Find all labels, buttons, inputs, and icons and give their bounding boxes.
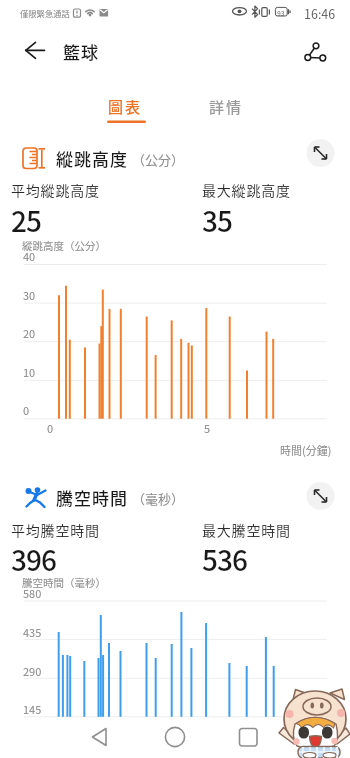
- staticText: 籃球: [63, 39, 99, 64]
- staticText: 圖表: [108, 96, 143, 118]
- staticText: 10: [23, 364, 36, 380]
- staticText: 20: [23, 325, 36, 341]
- staticText: 580: [23, 585, 42, 601]
- button[interactable]: [306, 139, 335, 168]
- staticText: 縱跳高度: [56, 146, 128, 171]
- button[interactable]: [14, 35, 56, 65]
- staticText: 35: [202, 200, 232, 241]
- staticText: 最大騰空時間: [202, 520, 291, 540]
- staticText: 536: [202, 539, 247, 580]
- staticText: 0: [47, 420, 54, 436]
- button[interactable]: [223, 719, 273, 758]
- staticText: 5: [204, 420, 211, 436]
- staticText: 40: [23, 248, 36, 264]
- staticText: （毫秒）: [132, 489, 185, 508]
- staticText: 396: [11, 539, 56, 580]
- staticText: （公分）: [132, 150, 185, 169]
- staticText: 145: [23, 701, 42, 717]
- staticText: 最大縱跳高度: [202, 180, 291, 200]
- staticText: 93: [277, 8, 285, 18]
- staticText: 縱跳高度（公分）: [22, 238, 106, 253]
- button[interactable]: [75, 719, 125, 758]
- staticText: 僅限緊急通話: [20, 7, 70, 19]
- staticText: 0: [23, 402, 30, 418]
- staticText: 25: [11, 200, 41, 241]
- staticText: 平均騰空時間: [11, 520, 100, 540]
- staticText: 290: [23, 663, 42, 679]
- button[interactable]: [96, 88, 156, 124]
- staticText: 詳情: [209, 96, 244, 118]
- staticText: 平均縱跳高度: [11, 180, 100, 200]
- staticText: 時間(分鐘): [280, 442, 332, 458]
- button[interactable]: [197, 88, 257, 124]
- button[interactable]: [150, 719, 200, 758]
- staticText: 騰空時間: [56, 485, 128, 510]
- staticText: 30: [23, 287, 36, 303]
- button[interactable]: [306, 482, 335, 511]
- staticText: 16:46: [304, 4, 336, 22]
- button[interactable]: [298, 35, 338, 67]
- staticText: 騰空時間（毫秒）: [22, 575, 106, 590]
- staticText: 435: [23, 624, 42, 640]
